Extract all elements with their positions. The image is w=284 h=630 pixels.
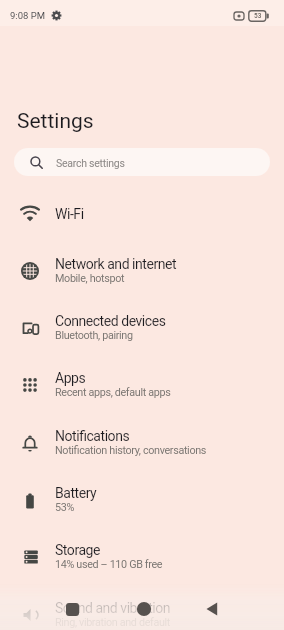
staticText: Ring, vibration and default xyxy=(55,616,171,629)
button[interactable] xyxy=(130,595,158,623)
staticText: Notifications xyxy=(55,428,130,444)
staticText: Battery xyxy=(55,485,97,501)
button[interactable]: Storage xyxy=(0,528,284,585)
staticText: 53 xyxy=(254,12,262,20)
staticText: Storage xyxy=(55,542,100,558)
staticText: Apps xyxy=(55,370,86,386)
button[interactable]: Sound and vibration xyxy=(0,586,284,630)
staticText: Recent apps, default apps xyxy=(55,386,171,399)
button[interactable] xyxy=(58,595,86,623)
staticText: 53% xyxy=(55,501,74,514)
staticText: Bluetooth, pairing xyxy=(55,329,133,342)
button[interactable]: Network and internet xyxy=(0,242,284,299)
staticText: Settings xyxy=(17,109,94,134)
staticText: Network and internet xyxy=(55,256,177,272)
button[interactable]: Connected devices xyxy=(0,299,284,356)
button[interactable]: Search settings xyxy=(14,148,270,176)
button[interactable]: Battery xyxy=(0,471,284,528)
staticText: Sound and vibration xyxy=(55,600,171,616)
staticText: 9:08 PM xyxy=(10,10,45,21)
staticText: 14% used – 110 GB free xyxy=(55,558,163,571)
staticText: Connected devices xyxy=(55,313,166,329)
button[interactable]: Notifications xyxy=(0,414,284,471)
staticText: Notification history, conversations xyxy=(55,444,207,457)
button[interactable]: Apps xyxy=(0,356,284,413)
staticText: Mobile, hotspot xyxy=(55,272,125,285)
button[interactable] xyxy=(198,595,226,623)
staticText: Wi-Fi xyxy=(55,206,84,222)
button[interactable]: Wi-Fi xyxy=(0,185,284,242)
staticText: Search settings xyxy=(56,157,125,169)
